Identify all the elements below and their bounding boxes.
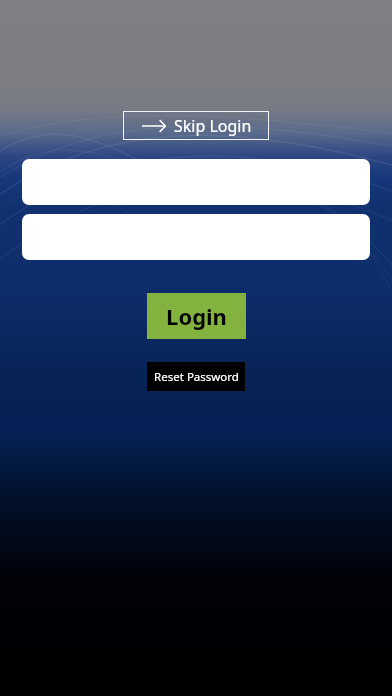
staticText: Login bbox=[166, 301, 227, 331]
button[interactable]: Password field bbox=[22, 214, 370, 260]
button[interactable]: Reset Password bbox=[147, 362, 245, 391]
staticText: Skip Login bbox=[174, 115, 252, 137]
other: Skip Login arrow bbox=[141, 119, 167, 133]
button[interactable]: Login bbox=[147, 293, 246, 339]
button[interactable]: Skip Login arrow bbox=[123, 111, 269, 140]
staticText: Reset Password bbox=[154, 369, 239, 385]
button[interactable]: Username field bbox=[22, 159, 370, 205]
